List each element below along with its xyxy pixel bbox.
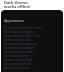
staticText: Stream quality high — [4, 58, 33, 62]
staticText: Dark theme, — [4, 0, 29, 5]
staticText: Use system default theme — [4, 26, 42, 30]
staticText: Appearance — [4, 18, 25, 23]
staticText: Offline library sync — [4, 38, 32, 42]
staticText: Account and privacy — [4, 62, 34, 66]
staticText: works offline — [4, 4, 31, 9]
staticText: About this version — [4, 66, 31, 70]
staticText: Clear local cache — [4, 54, 29, 58]
staticText: Auto play next episode — [4, 42, 38, 46]
staticText: Background refresh — [4, 50, 33, 54]
staticText: Download over Wi-Fi only — [4, 34, 41, 38]
staticText: Dark theme always on — [4, 30, 37, 34]
staticText: Notifications enabled — [4, 46, 35, 50]
